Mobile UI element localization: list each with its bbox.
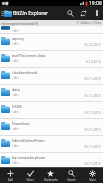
- staticText: <dir>: [12, 76, 20, 80]
- button[interactable]: clockworkmod: [0, 68, 103, 84]
- staticText: aquery: [12, 36, 25, 41]
- button[interactable]: Navigate up: [0, 6, 4, 20]
- button[interactable]: aquery: [0, 34, 103, 50]
- staticText: 19:08: [89, 0, 102, 6]
- staticText: DCIM: [12, 104, 22, 109]
- staticText: ha.tomaszka.photo: [12, 155, 46, 160]
- button[interactable]: Download: [0, 119, 103, 135]
- staticText: data: [12, 87, 20, 92]
- button[interactable]: data: [0, 85, 103, 101]
- staticText: More: [89, 178, 96, 182]
- staticText: <dir>: [12, 42, 20, 46]
- button[interactable]: More options: [90, 6, 103, 20]
- staticText: /storage/emulated/0: [1, 21, 38, 26]
- staticText: 16-11-2013: [84, 128, 101, 132]
- staticText: <dir>: [12, 127, 20, 131]
- staticText: 16-11-2013: [84, 94, 101, 98]
- staticText: Download: [12, 121, 30, 126]
- button[interactable]: ha.tomaszka.photo: [0, 153, 103, 167]
- staticText: bsefTla.kernel-data: [12, 53, 46, 58]
- staticText: 16-11-2013: [84, 77, 101, 81]
- staticText: Add: [8, 178, 13, 182]
- staticText: Bookmarks: [44, 178, 58, 182]
- button[interactable]: bsefTla.kernel-data: [0, 51, 103, 67]
- button[interactable]: DCIM: [0, 102, 103, 118]
- staticText: 16-11-2013: [84, 162, 101, 166]
- staticText: 16-11-2013: [84, 145, 101, 149]
- staticText: 6-12-2013: [86, 60, 101, 64]
- staticText: clockworkmod: [12, 70, 38, 75]
- staticText: <dir>: [12, 93, 20, 97]
- staticText: <dir>: [12, 29, 20, 33]
- staticText: 16-12-2013: [84, 43, 101, 47]
- staticText: 11 folders, 0 files: [76, 21, 102, 25]
- staticText: BitZin Explorer: [13, 10, 49, 17]
- button[interactable]: More: [82, 168, 103, 183]
- button[interactable]: Search: [64, 6, 77, 20]
- staticText: Select: [26, 178, 34, 182]
- staticText: <dir>: [12, 59, 20, 63]
- staticText: <dir>: [12, 110, 20, 114]
- button[interactable]: Bookmarks: [40, 168, 61, 183]
- staticText: Search: [67, 178, 76, 182]
- button[interactable]: Search: [61, 168, 82, 183]
- button[interactable]: Add: [0, 168, 20, 183]
- button[interactable]: EditedOnlinePhoto: [0, 136, 103, 152]
- button[interactable]: Select: [20, 168, 40, 183]
- button[interactable]: <dir>: [0, 26, 103, 33]
- staticText: 16-11-2013: [84, 111, 101, 115]
- staticText: <dir>: [12, 161, 20, 165]
- button[interactable]: Refresh: [77, 6, 90, 20]
- staticText: EditedOnlinePhoto: [12, 138, 45, 143]
- staticText: <dir>: [12, 144, 20, 148]
